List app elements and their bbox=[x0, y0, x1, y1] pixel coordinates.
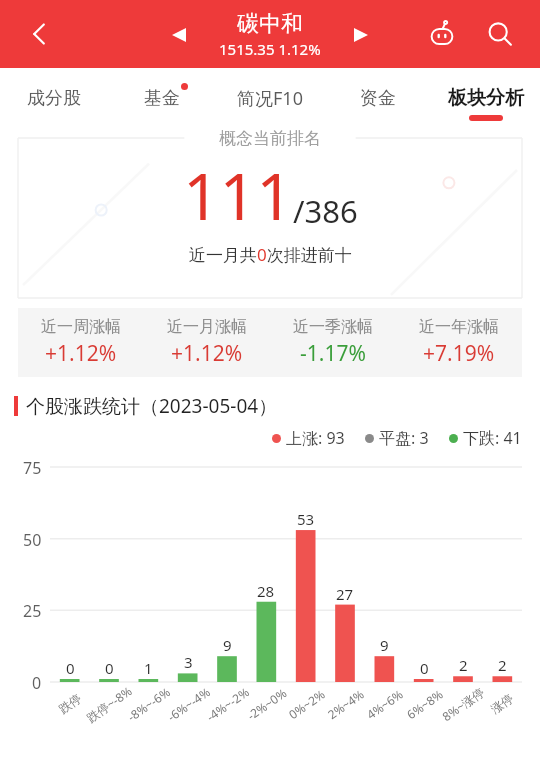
staticText: -6%~-4% bbox=[164, 683, 213, 725]
staticText: 2 bbox=[498, 655, 507, 675]
staticText: 概念当前排名 bbox=[219, 128, 321, 149]
staticText: 资金 bbox=[360, 87, 396, 110]
staticText: 25 bbox=[23, 600, 42, 622]
button[interactable]: Previous bbox=[161, 17, 197, 53]
staticText: 跌停 bbox=[56, 690, 84, 717]
staticText: 近一年涨幅 bbox=[419, 317, 499, 337]
staticText: -1.17% bbox=[300, 339, 366, 368]
staticText: 9 bbox=[380, 635, 389, 655]
button[interactable]: Next bbox=[343, 17, 379, 53]
staticText: 涨停 bbox=[488, 690, 516, 717]
staticText: 个股涨跌统计（2023-05-04） bbox=[26, 393, 278, 419]
staticText: 28 bbox=[257, 581, 275, 601]
staticText: 近一季涨幅 bbox=[293, 317, 373, 337]
staticText: 跌停~-8% bbox=[83, 682, 135, 725]
button[interactable]: 近一季涨幅 bbox=[270, 317, 396, 368]
staticText: 基金 bbox=[144, 87, 180, 110]
staticText: 0 bbox=[66, 658, 75, 678]
staticText: +1.12% bbox=[45, 339, 117, 368]
button[interactable]: 成分股 bbox=[0, 68, 108, 128]
staticText: -2%~0% bbox=[243, 684, 289, 723]
staticText: 碳中和 bbox=[237, 10, 303, 38]
staticText: -8%~-6% bbox=[124, 683, 173, 725]
staticText: 0 bbox=[420, 658, 429, 678]
button[interactable]: 近一月涨幅 bbox=[144, 317, 270, 368]
staticText: 0 bbox=[32, 672, 42, 694]
button[interactable]: 基金 bbox=[108, 68, 216, 128]
staticText: -4%~-2% bbox=[203, 683, 252, 725]
staticText: 50 bbox=[23, 529, 42, 551]
staticText: 近一周涨幅 bbox=[41, 317, 121, 337]
button[interactable]: 个股涨跌统计（2023-05-04） bbox=[14, 393, 540, 419]
staticText: 0 bbox=[105, 658, 114, 678]
staticText: 板块分析 bbox=[448, 86, 524, 110]
staticText: 6%~8% bbox=[403, 686, 446, 722]
staticText: 2%~4% bbox=[324, 686, 367, 722]
staticText: 平盘: 3 bbox=[379, 427, 429, 449]
staticText: 75 bbox=[23, 457, 42, 479]
button[interactable]: Back bbox=[18, 12, 62, 56]
staticText: 8%~涨停 bbox=[439, 684, 487, 724]
staticText: 27 bbox=[336, 584, 354, 604]
button[interactable]: Assistant bbox=[420, 12, 464, 56]
staticText: 53 bbox=[297, 509, 315, 529]
staticText: 1 bbox=[144, 658, 153, 678]
staticText: 下跌: 41 bbox=[463, 427, 522, 449]
staticText: /386 bbox=[293, 190, 358, 232]
button[interactable]: 简况F10 bbox=[216, 68, 324, 128]
staticText: 近一月共0次排进前十 bbox=[189, 243, 352, 266]
staticText: 3 bbox=[184, 652, 193, 672]
staticText: 0%~2% bbox=[285, 686, 328, 722]
staticText: +7.19% bbox=[423, 339, 495, 368]
staticText: 2 bbox=[459, 655, 468, 675]
staticText: 4%~6% bbox=[363, 686, 406, 722]
staticText: 成分股 bbox=[27, 87, 81, 110]
button[interactable] bbox=[18, 138, 522, 298]
staticText: 1515.35 1.12% bbox=[219, 39, 321, 59]
staticText: 上涨: 93 bbox=[286, 427, 345, 449]
staticText: 9 bbox=[223, 635, 232, 655]
staticText: 111 bbox=[183, 152, 293, 239]
staticText: 近一月涨幅 bbox=[167, 317, 247, 337]
button[interactable]: 板块分析 bbox=[432, 68, 540, 128]
button[interactable]: 近一年涨幅 bbox=[396, 317, 522, 368]
staticText: 简况F10 bbox=[237, 86, 303, 111]
button[interactable]: 近一周涨幅 bbox=[18, 317, 144, 368]
button[interactable]: 资金 bbox=[324, 68, 432, 128]
button[interactable]: Search bbox=[478, 12, 522, 56]
staticText: +1.12% bbox=[171, 339, 243, 368]
